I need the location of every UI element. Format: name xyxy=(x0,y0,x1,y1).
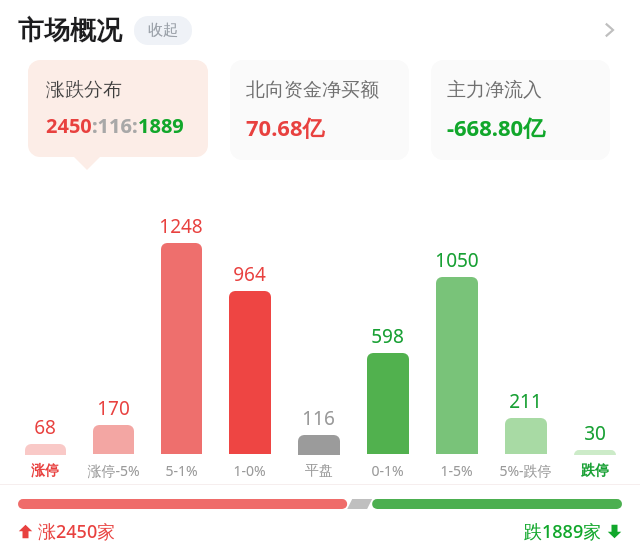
staticText: 2450 xyxy=(46,112,92,139)
button[interactable]: 30 xyxy=(563,188,626,480)
button[interactable]: 598 xyxy=(356,188,419,480)
staticText: 涨跌分布 xyxy=(46,78,122,102)
staticText: 1889 xyxy=(138,112,184,139)
staticText: 964 xyxy=(233,261,266,287)
staticText: 市场概况 xyxy=(18,14,122,47)
staticText: 涨停 xyxy=(31,462,59,480)
staticText: 北向资金净买额 xyxy=(246,78,379,102)
button[interactable]: 964 xyxy=(218,188,281,480)
staticText: 170 xyxy=(97,395,130,421)
staticText: 1248 xyxy=(159,213,203,239)
staticText: 116 xyxy=(302,405,335,431)
button[interactable]: 1050 xyxy=(425,188,488,480)
button[interactable]: 涨跌分布 xyxy=(28,60,208,157)
staticText: 主力净流入 xyxy=(447,78,542,102)
staticText: 5%-跌停 xyxy=(499,461,552,480)
staticText: 涨停-5% xyxy=(87,461,140,480)
staticText: 211 xyxy=(509,388,542,414)
button[interactable]: 116 xyxy=(287,188,350,480)
staticText: 0-1% xyxy=(371,461,404,480)
staticText: 1-0% xyxy=(233,461,266,480)
staticText: 68 xyxy=(34,414,56,440)
staticText: :116: xyxy=(92,112,138,139)
button[interactable]: 收起 xyxy=(134,16,192,45)
staticText: 5-1% xyxy=(165,461,198,480)
staticText: -668.80亿 xyxy=(447,112,546,142)
staticText: 70.68亿 xyxy=(246,112,325,142)
button[interactable]: 主力净流入 xyxy=(431,60,610,160)
staticText: 涨2450家 xyxy=(38,519,116,544)
button[interactable]: 211 xyxy=(494,188,557,480)
staticText: 1050 xyxy=(435,247,479,273)
button[interactable]: 北向资金净买额 xyxy=(230,60,409,160)
staticText: 跌1889家 xyxy=(524,519,602,544)
staticText: 平盘 xyxy=(305,462,333,480)
staticText: 598 xyxy=(371,323,404,349)
button[interactable]: 170 xyxy=(82,188,144,480)
staticText: 30 xyxy=(584,420,606,446)
button[interactable]: 68 xyxy=(14,188,76,480)
staticText: 1-5% xyxy=(440,461,473,480)
staticText: 收起 xyxy=(148,21,178,40)
staticText: 跌停 xyxy=(581,462,609,480)
button[interactable]: 1248 xyxy=(150,188,212,480)
button[interactable]: More xyxy=(592,13,626,47)
